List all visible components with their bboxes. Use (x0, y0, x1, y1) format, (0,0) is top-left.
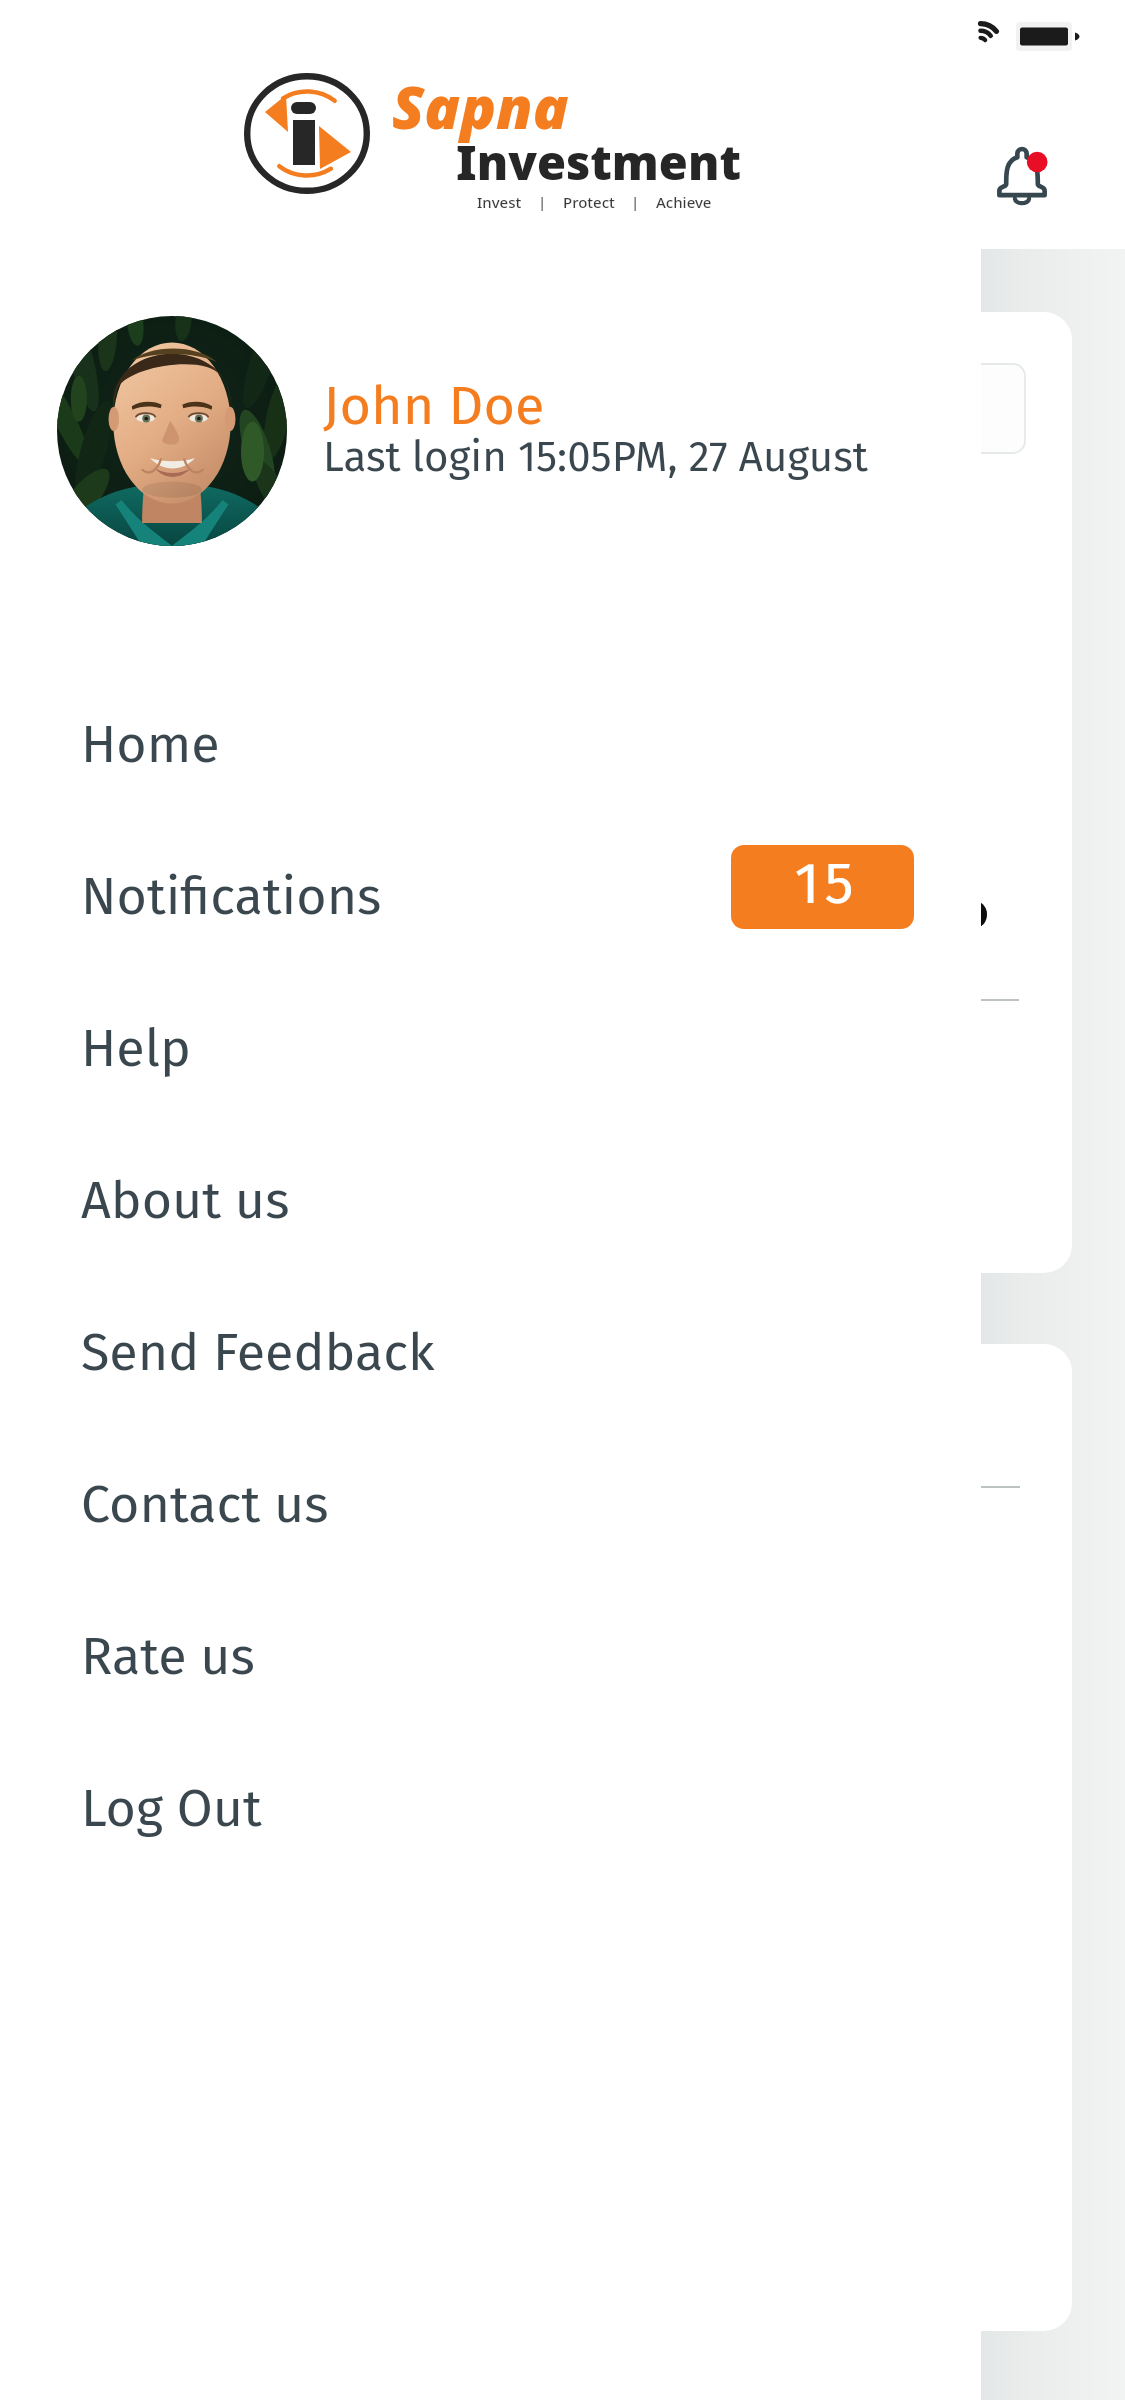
staticText: John Doe (323, 374, 545, 439)
button[interactable]: Notifications (0, 820, 981, 972)
staticText: 15 (794, 849, 859, 919)
button[interactable]: Log Out (0, 1732, 981, 1884)
staticText: Send Feedback (81, 1321, 435, 1383)
staticText: About us (81, 1169, 290, 1231)
staticText: | (631, 192, 640, 212)
staticText: Notifications (81, 865, 382, 927)
staticText: Home (81, 713, 220, 775)
staticText: Contact us (81, 1473, 329, 1535)
staticText: Rate us (81, 1625, 255, 1687)
button[interactable]: Contact us (0, 1428, 981, 1580)
button[interactable]: Help (0, 972, 981, 1124)
button[interactable]: Home (0, 668, 981, 820)
staticText: Protect (563, 192, 615, 212)
staticText: Log Out (81, 1777, 262, 1839)
staticText: | (538, 192, 547, 212)
staticText: Sapna (392, 66, 569, 146)
staticText: Achieve (656, 192, 712, 212)
button[interactable]: Notifications (982, 135, 1062, 215)
staticText: Invest (477, 192, 522, 212)
button[interactable]: John Doe (40, 300, 940, 562)
staticText: Help (81, 1017, 191, 1079)
button[interactable]: Send Feedback (0, 1276, 981, 1428)
staticText: Investment (456, 130, 742, 194)
button[interactable]: Rate us (0, 1580, 981, 1732)
staticText: Last login 15:05PM, 27 August (323, 432, 868, 482)
button[interactable]: About us (0, 1124, 981, 1276)
